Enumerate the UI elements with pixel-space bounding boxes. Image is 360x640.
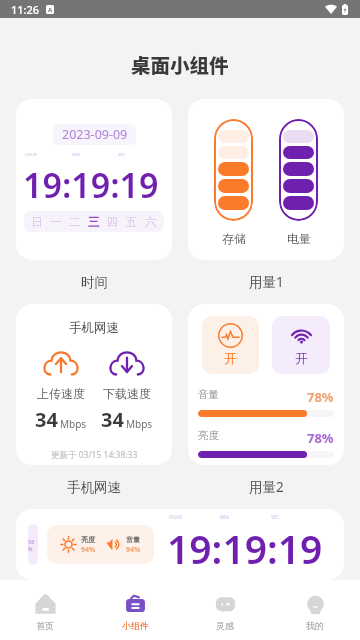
staticText: 34 bbox=[101, 406, 124, 433]
staticText: 一 bbox=[50, 215, 62, 229]
staticText: 二 bbox=[69, 215, 81, 229]
button[interactable]: 2023-09-09 bbox=[16, 99, 172, 260]
button[interactable]: Wifi toggle bbox=[272, 316, 330, 374]
staticText: 11:26 bbox=[11, 2, 40, 17]
staticText: MIN bbox=[72, 152, 118, 157]
button[interactable]: 首页 bbox=[0, 580, 90, 640]
button[interactable]: 灵感 bbox=[180, 580, 270, 640]
staticText: 首页 bbox=[36, 620, 54, 631]
staticText: HOUR bbox=[169, 514, 220, 520]
staticText: 手机网速 bbox=[69, 320, 119, 336]
staticText: 19:19:19 bbox=[23, 162, 159, 208]
staticText: 78% bbox=[307, 429, 334, 447]
staticText: 三 bbox=[88, 215, 100, 229]
staticText: 19:19:19 bbox=[167, 522, 323, 575]
staticText: 手机网速 bbox=[67, 479, 121, 496]
staticText: 94% bbox=[126, 545, 141, 555]
staticText: 音量 bbox=[198, 388, 219, 401]
staticText: 亮度 bbox=[81, 535, 95, 544]
staticText: 四 bbox=[107, 215, 119, 229]
staticText: 桌面小组件 bbox=[131, 50, 229, 78]
staticText: 音量 bbox=[126, 535, 140, 544]
button[interactable]: 手机网速 bbox=[16, 304, 172, 465]
staticText: 存储 bbox=[222, 231, 246, 246]
staticText: 2023-09-09 bbox=[62, 126, 128, 143]
staticText: 下载速度 bbox=[103, 386, 151, 401]
staticText: Mbps bbox=[126, 417, 153, 431]
staticText: 用量1 bbox=[249, 273, 284, 291]
staticText: 小组件 bbox=[122, 620, 149, 631]
button[interactable]: 56% bbox=[16, 509, 344, 580]
staticText: 开 bbox=[224, 351, 237, 367]
staticText: 日 bbox=[31, 215, 43, 229]
staticText: 56% bbox=[28, 538, 38, 552]
staticText: MIN bbox=[220, 514, 271, 520]
staticText: 五 bbox=[126, 215, 138, 229]
staticText: 灵感 bbox=[216, 620, 234, 631]
staticText: 开 bbox=[295, 351, 308, 367]
staticText: SEC bbox=[271, 514, 322, 520]
button[interactable]: 存储 bbox=[188, 99, 344, 260]
button[interactable]: 小组件 bbox=[90, 580, 180, 640]
button[interactable]: 我的 bbox=[270, 580, 360, 640]
staticText: 78% bbox=[307, 388, 334, 406]
button[interactable]: Sound toggle bbox=[202, 316, 259, 374]
staticText: 我的 bbox=[306, 620, 324, 631]
staticText: 更新于 03/15 14:38:33 bbox=[51, 449, 138, 461]
staticText: 94% bbox=[81, 545, 96, 555]
staticText: A bbox=[48, 6, 53, 14]
staticText: 电量 bbox=[287, 231, 311, 246]
staticText: 34 bbox=[35, 406, 58, 433]
staticText: HOUR bbox=[25, 152, 72, 157]
staticText: 用量2 bbox=[249, 478, 284, 496]
staticText: SEC bbox=[118, 152, 164, 157]
button[interactable]: Sound toggle bbox=[188, 304, 344, 465]
staticText: Mbps bbox=[60, 417, 87, 431]
staticText: 亮度 bbox=[198, 429, 219, 442]
staticText: 上传速度 bbox=[37, 386, 85, 401]
staticText: 六 bbox=[145, 215, 157, 229]
staticText: 时间 bbox=[81, 274, 108, 291]
